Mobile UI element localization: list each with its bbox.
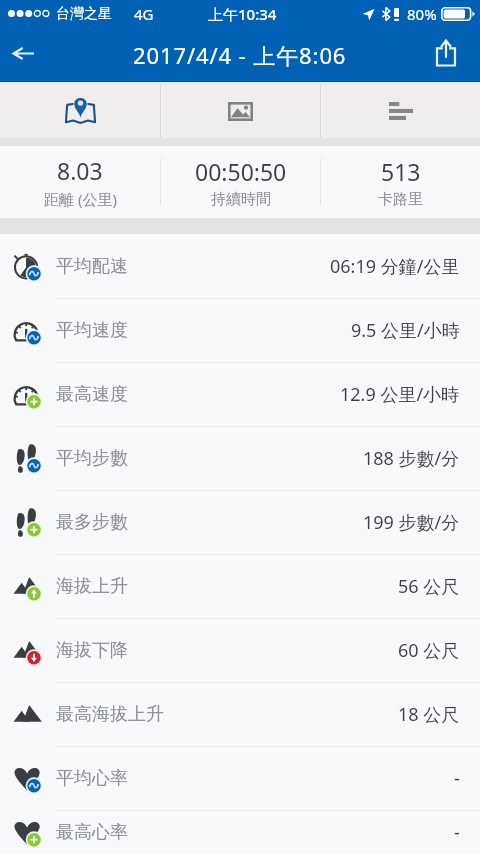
staticText: 海拔下降 — [56, 639, 128, 662]
button[interactable]: 平均步數 — [0, 426, 480, 490]
staticText: 56 公尺 — [398, 574, 460, 599]
staticText: 8.03 — [57, 155, 103, 186]
staticText: 平均心率 — [56, 767, 128, 790]
staticText: 06:19 分鐘/公里 — [330, 254, 460, 279]
button[interactable]: 平均心率 — [0, 746, 480, 810]
button[interactable]: 海拔下降 — [0, 618, 480, 682]
staticText: 4G — [134, 4, 154, 24]
staticText: - — [454, 820, 460, 845]
staticText: 平均步數 — [56, 447, 128, 470]
button[interactable]: Photos — [161, 84, 320, 138]
staticText: 513 — [381, 156, 421, 187]
staticText: 台灣之星 — [56, 5, 112, 23]
button[interactable]: 最高心率 — [0, 810, 480, 854]
staticText: 海拔上升 — [56, 575, 128, 598]
staticText: 卡路里 — [378, 190, 423, 209]
staticText: 60 公尺 — [398, 638, 460, 663]
staticText: 最高速度 — [56, 383, 128, 406]
staticText: 18 公尺 — [398, 702, 460, 727]
staticText: 12.9 公里/小時 — [340, 382, 460, 407]
staticText: 80% — [407, 4, 437, 24]
staticText: 平均配速 — [56, 255, 128, 278]
button[interactable]: Charts — [321, 84, 480, 138]
staticText: 平均速度 — [56, 319, 128, 342]
staticText: 188 步數/分 — [363, 446, 460, 471]
button[interactable]: 最高海拔上升 — [0, 682, 480, 746]
button[interactable]: Back — [0, 28, 50, 81]
staticText: 00:50:50 — [195, 156, 287, 187]
button[interactable]: 最多步數 — [0, 490, 480, 554]
staticText: 上午10:34 — [208, 4, 277, 24]
staticText: 9.5 公里/小時 — [351, 318, 460, 343]
staticText: 最高海拔上升 — [56, 703, 164, 726]
staticText: 2017/4/4 - 上午8:06 — [133, 40, 347, 70]
button[interactable]: 平均配速 — [0, 234, 480, 298]
staticText: 最高心率 — [56, 821, 128, 844]
staticText: 199 步數/分 — [363, 510, 460, 535]
staticText: 持續時間 — [211, 190, 271, 209]
button[interactable]: 海拔上升 — [0, 554, 480, 618]
staticText: 最多步數 — [56, 511, 128, 534]
button[interactable]: Share — [430, 28, 480, 81]
button[interactable]: 平均速度 — [0, 298, 480, 362]
staticText: - — [454, 766, 460, 791]
staticText: 距離 (公里) — [44, 189, 117, 209]
button[interactable]: 最高速度 — [0, 362, 480, 426]
button[interactable]: Map — [0, 84, 160, 138]
